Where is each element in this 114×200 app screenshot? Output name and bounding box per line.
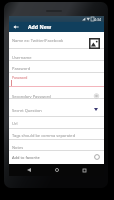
button[interactable]: Add to favorite — [9, 151, 104, 163]
button[interactable]: Recents — [77, 164, 91, 176]
staticText: Add New — [28, 23, 52, 30]
staticText: Notes — [12, 145, 24, 150]
staticText: Name ex: Twitter/Facebook — [12, 38, 64, 43]
staticText: 4:34 — [94, 17, 102, 22]
button[interactable]: Home — [50, 164, 64, 176]
staticText: Username — [12, 55, 32, 60]
button[interactable]: Pick image — [88, 37, 100, 49]
button[interactable]: Back — [10, 22, 21, 32]
staticText: Tags should be comma separated — [12, 133, 76, 138]
staticText: Add to favorite — [12, 155, 40, 160]
staticText: Url — [12, 121, 18, 126]
staticText: Password — [12, 66, 31, 71]
staticText: Secondary Password — [12, 94, 51, 99]
button[interactable]: Back — [22, 164, 36, 176]
staticText: Secret Question — [12, 108, 42, 113]
staticText: Password — [12, 75, 28, 80]
